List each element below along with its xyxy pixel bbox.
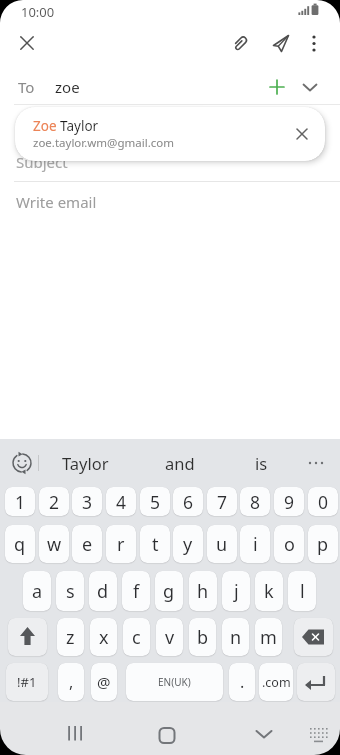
staticText: x bbox=[99, 625, 109, 650]
button[interactable]: f bbox=[122, 571, 150, 611]
button[interactable]: EN(UK) bbox=[126, 663, 223, 701]
button[interactable]: w bbox=[39, 525, 69, 563]
button[interactable] bbox=[14, 30, 40, 56]
button[interactable] bbox=[0, 70, 340, 104]
button[interactable]: 9 bbox=[274, 487, 304, 516]
button[interactable]: z bbox=[57, 618, 84, 656]
button[interactable] bbox=[248, 716, 280, 748]
staticText: To bbox=[18, 77, 35, 97]
button[interactable]: @ bbox=[91, 663, 117, 701]
staticText: 2 bbox=[49, 490, 60, 514]
staticText: zoe bbox=[55, 77, 80, 97]
button[interactable] bbox=[303, 453, 329, 473]
button[interactable] bbox=[294, 618, 333, 656]
button[interactable] bbox=[8, 618, 47, 656]
staticText: 10:00 bbox=[21, 3, 55, 21]
staticText: w bbox=[47, 532, 62, 557]
button[interactable]: p bbox=[308, 525, 338, 563]
button[interactable] bbox=[152, 716, 182, 748]
staticText: a bbox=[32, 579, 43, 604]
button[interactable] bbox=[291, 123, 313, 145]
button[interactable] bbox=[228, 31, 252, 55]
staticText: !#1 bbox=[17, 673, 37, 691]
staticText: and bbox=[165, 452, 195, 474]
staticText: 8 bbox=[250, 490, 261, 514]
staticText: . bbox=[240, 671, 245, 693]
button[interactable]: e bbox=[72, 525, 102, 563]
button[interactable]: o bbox=[274, 525, 304, 563]
button[interactable]: 6 bbox=[173, 487, 203, 516]
button[interactable] bbox=[269, 30, 294, 55]
staticText: l bbox=[300, 579, 305, 604]
button[interactable]: l bbox=[288, 571, 316, 611]
button[interactable]: 3 bbox=[72, 487, 102, 516]
button[interactable]: a bbox=[23, 571, 51, 611]
button[interactable]: r bbox=[106, 525, 136, 563]
staticText: 0 bbox=[318, 490, 329, 514]
staticText: r bbox=[117, 532, 125, 557]
button[interactable]: 8 bbox=[240, 487, 270, 516]
button[interactable]: 1 bbox=[5, 487, 35, 516]
staticText: @ bbox=[97, 672, 111, 692]
button[interactable]: m bbox=[255, 618, 282, 656]
button[interactable]: y bbox=[173, 525, 203, 563]
button[interactable]: 7 bbox=[207, 487, 237, 516]
button[interactable]: v bbox=[156, 618, 183, 656]
staticText: p bbox=[317, 532, 329, 557]
staticText: n bbox=[230, 625, 242, 650]
button[interactable] bbox=[10, 451, 34, 475]
staticText: i bbox=[253, 532, 258, 557]
button[interactable]: 4 bbox=[106, 487, 136, 516]
staticText: EN(UK) bbox=[158, 675, 191, 689]
staticText: zoe.taylor.wm@gmail.com bbox=[33, 135, 174, 151]
button[interactable]: d bbox=[89, 571, 117, 611]
button[interactable] bbox=[265, 75, 289, 99]
button[interactable]: u bbox=[207, 525, 237, 563]
button[interactable]: Zoe Taylor bbox=[15, 107, 325, 161]
button[interactable]: 0 bbox=[308, 487, 338, 516]
button[interactable]: s bbox=[56, 571, 84, 611]
button[interactable]: k bbox=[255, 571, 283, 611]
staticText: 7 bbox=[217, 490, 228, 514]
button[interactable]: and bbox=[140, 449, 220, 477]
button[interactable]: i bbox=[240, 525, 270, 563]
staticText: f bbox=[133, 579, 140, 604]
button[interactable]: g bbox=[155, 571, 183, 611]
staticText: 9 bbox=[284, 490, 295, 514]
button[interactable]: is bbox=[221, 449, 301, 477]
staticText: q bbox=[14, 532, 26, 557]
button[interactable]: c bbox=[123, 618, 150, 656]
staticText: Taylor bbox=[62, 452, 109, 474]
staticText: is bbox=[255, 452, 268, 474]
staticText: 1 bbox=[15, 490, 26, 514]
staticText: u bbox=[216, 532, 228, 557]
button[interactable] bbox=[303, 30, 325, 52]
button[interactable]: h bbox=[189, 571, 217, 611]
button[interactable]: . bbox=[229, 663, 255, 701]
button[interactable]: x bbox=[90, 618, 117, 656]
staticText: j bbox=[234, 579, 239, 604]
button[interactable]: .com bbox=[259, 663, 293, 701]
staticText: t bbox=[152, 532, 159, 557]
button[interactable] bbox=[60, 716, 90, 748]
button[interactable]: Taylor bbox=[45, 449, 125, 477]
staticText: Zoe Taylor bbox=[33, 117, 99, 135]
button[interactable] bbox=[305, 722, 331, 748]
staticText: h bbox=[197, 579, 209, 604]
button[interactable]: q bbox=[5, 525, 35, 563]
button[interactable] bbox=[297, 663, 335, 701]
staticText: d bbox=[97, 579, 109, 604]
staticText: c bbox=[132, 625, 141, 650]
button[interactable] bbox=[299, 76, 321, 98]
button[interactable]: n bbox=[222, 618, 249, 656]
button[interactable]: j bbox=[222, 571, 250, 611]
staticText: s bbox=[66, 579, 75, 604]
staticText: Subject bbox=[16, 152, 68, 172]
button[interactable]: t bbox=[140, 525, 170, 563]
button[interactable]: b bbox=[189, 618, 216, 656]
button[interactable]: 2 bbox=[39, 487, 69, 516]
button[interactable]: !#1 bbox=[6, 663, 48, 701]
staticText: 4 bbox=[116, 490, 127, 514]
button[interactable]: 5 bbox=[140, 487, 170, 516]
button[interactable]: , bbox=[58, 663, 84, 701]
